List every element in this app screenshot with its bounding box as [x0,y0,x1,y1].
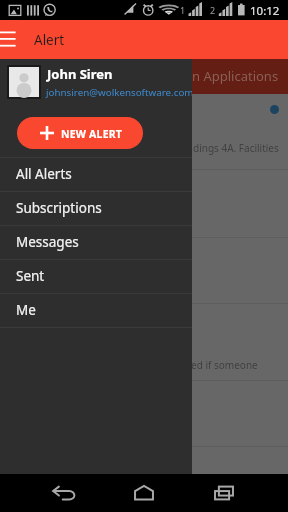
staticText: Sent [16,267,45,285]
staticText: Alert [34,31,65,49]
staticText: 1 [180,4,186,16]
staticText: johnsiren@wolkensoftware.com [46,86,192,99]
button[interactable]: dings 4A. Facilities [0,94,288,170]
staticText: ed if someone [191,358,258,372]
button[interactable]: NEW ALERT [17,117,143,149]
button[interactable]: Subscriptions [0,191,192,225]
button[interactable]: Recent apps [208,477,240,509]
button[interactable] [0,238,288,304]
staticText: Messages [16,233,79,251]
staticText: Me [16,301,36,319]
button[interactable]: Back [48,477,80,509]
button[interactable]: All Alerts [0,157,192,191]
button[interactable] [0,170,288,238]
staticText: 10:12 [250,3,280,19]
button[interactable]: Me [0,293,192,327]
button[interactable] [0,381,288,447]
button[interactable]: ed if someone [0,304,288,381]
staticText: dings 4A. Facilities [193,141,279,155]
staticText: John Siren [47,65,113,83]
staticText: All Alerts [16,165,72,183]
button[interactable]: Home [128,477,160,509]
staticText: 2 [210,4,216,16]
button[interactable]: Sent [0,259,192,293]
staticText: n Applications [192,67,279,85]
staticText: Subscriptions [16,199,102,217]
button[interactable]: Open navigation drawer [0,20,22,59]
button[interactable]: Messages [0,225,192,259]
staticText: NEW ALERT [61,127,123,141]
